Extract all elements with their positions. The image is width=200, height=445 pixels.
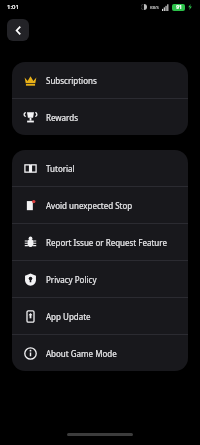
button[interactable]: Rewards — [12, 99, 188, 135]
staticText: App Update — [46, 311, 91, 322]
staticText: Privacy Policy — [46, 274, 97, 285]
button[interactable]: Back — [7, 19, 29, 41]
staticText: Tutorial — [46, 163, 75, 174]
staticText: 91 — [176, 4, 182, 11]
staticText: Report Issue or Request Feature — [46, 237, 167, 248]
button[interactable]: About Game Mode — [12, 335, 188, 371]
button[interactable]: Tutorial — [12, 150, 188, 186]
staticText: Rewards — [46, 112, 78, 123]
button[interactable]: Privacy Policy — [12, 261, 188, 297]
staticText: About Game Mode — [46, 348, 117, 359]
staticText: Avoid unexpected Stop — [46, 200, 133, 211]
staticText: KB/S — [150, 5, 159, 10]
button[interactable]: Avoid unexpected Stop — [12, 187, 188, 223]
button[interactable]: Report Issue or Request Feature — [12, 224, 188, 260]
button[interactable]: Subscriptions — [12, 62, 188, 98]
button[interactable]: App Update — [12, 298, 188, 334]
staticText: 1:01 — [7, 3, 19, 11]
staticText: Subscriptions — [46, 75, 97, 86]
